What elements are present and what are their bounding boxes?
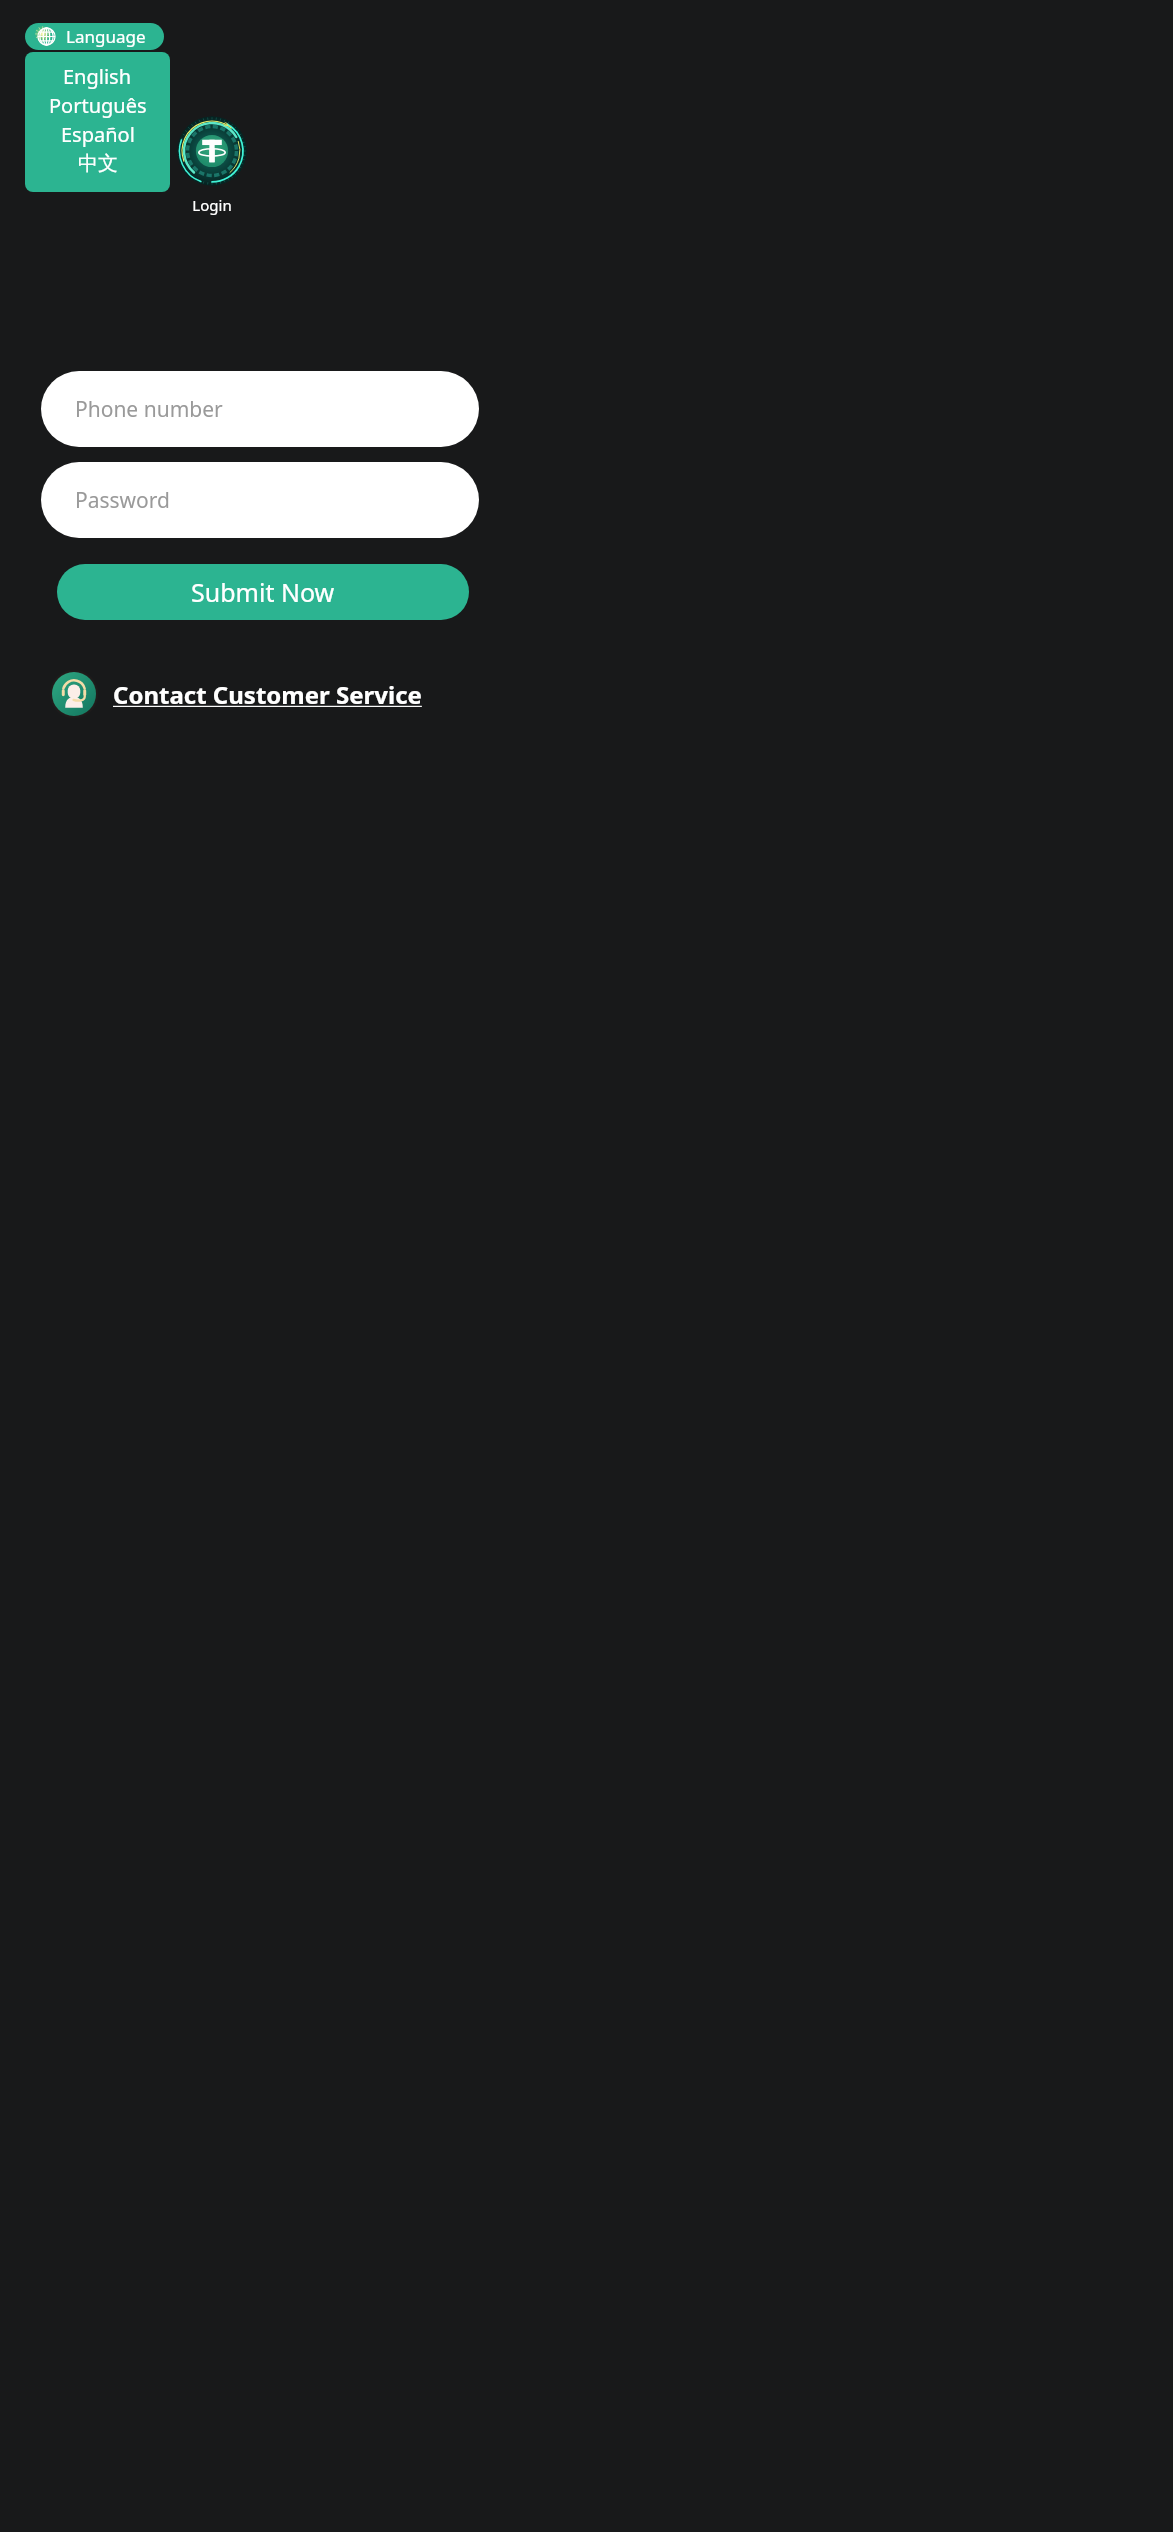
button[interactable]: Password — [41, 462, 479, 538]
staticText: English — [63, 63, 132, 90]
button[interactable]: English — [25, 62, 170, 91]
staticText: 中文 — [78, 151, 118, 176]
button[interactable]: Login — [177, 116, 247, 186]
button[interactable]: Contact Customer Service — [52, 672, 422, 716]
staticText: Submit Now — [191, 575, 335, 609]
staticText: Password — [75, 486, 170, 515]
staticText: Phone number — [75, 395, 223, 424]
button[interactable]: Phone number — [41, 371, 479, 447]
staticText: Login — [152, 195, 272, 215]
staticText: Contact Customer Service — [113, 678, 422, 711]
button[interactable]: 中文 — [25, 149, 170, 178]
button[interactable]: Português — [25, 91, 170, 120]
staticText: Português — [49, 92, 147, 119]
button[interactable]: Español — [25, 120, 170, 149]
button[interactable]: Submit Now — [57, 564, 469, 620]
staticText: Language — [66, 25, 146, 48]
staticText: Español — [61, 121, 135, 148]
button[interactable]: Language — [25, 23, 164, 50]
